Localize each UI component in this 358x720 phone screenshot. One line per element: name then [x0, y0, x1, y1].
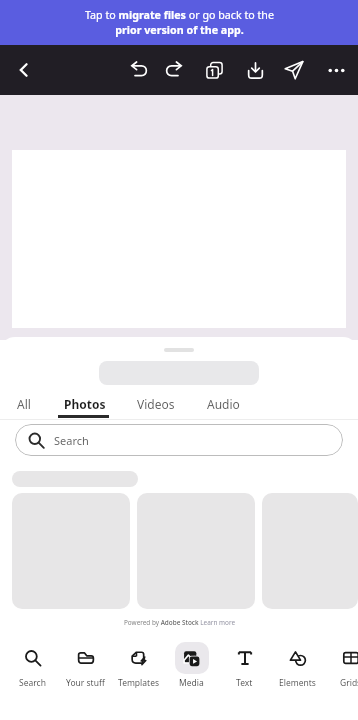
button[interactable]: All [17, 396, 31, 412]
staticText: Search [19, 677, 46, 689]
staticText: All [17, 396, 31, 412]
staticText: Photos [64, 396, 106, 412]
button[interactable]: Media [165, 642, 218, 689]
button[interactable]: Templates [112, 642, 165, 689]
button[interactable]: Back [7, 53, 41, 87]
button[interactable]: Share [277, 53, 311, 87]
button[interactable]: Videos [137, 396, 175, 412]
staticText: Videos [137, 396, 175, 412]
staticText: Media [179, 677, 204, 689]
staticText: Templates [118, 677, 159, 689]
button[interactable]: Photos [64, 396, 106, 412]
button[interactable]: Elements [271, 642, 324, 689]
button[interactable]: Download [238, 53, 272, 87]
button[interactable]: Your stuff [59, 642, 112, 689]
staticText: Audio [207, 396, 240, 412]
button[interactable]: Audio [207, 396, 240, 412]
button[interactable]: Search [15, 424, 343, 456]
button[interactable]: More options [319, 53, 353, 87]
button[interactable]: Grids [324, 642, 358, 689]
button[interactable]: Layers [197, 53, 231, 87]
staticText: Elements [279, 677, 316, 689]
staticText: Tap to migrate files or go back to the p… [85, 8, 274, 38]
staticText: Powered by Adobe Stock Learn more [124, 618, 235, 627]
staticText: Your stuff [66, 677, 105, 689]
staticText: Grids [340, 677, 358, 689]
button[interactable]: Tap to migrate files or go back to the p… [0, 0, 358, 45]
button[interactable]: Redo [157, 53, 191, 87]
button[interactable]: Text [218, 642, 271, 689]
button[interactable]: Undo [122, 53, 156, 87]
staticText: Text [236, 677, 253, 689]
staticText: Search [54, 433, 89, 448]
button[interactable]: Search [6, 642, 59, 689]
